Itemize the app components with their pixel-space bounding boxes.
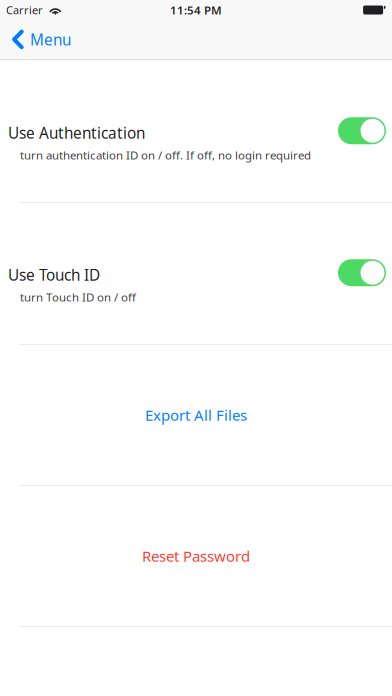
staticText: Export All Files: [145, 405, 247, 425]
button[interactable]: Use Authentication: [0, 107, 392, 160]
staticText: turn authentication ID on / off. If off,…: [20, 147, 311, 163]
button[interactable]: Reset Password: [0, 486, 392, 626]
button[interactable]: Export All Files: [0, 345, 392, 485]
staticText: Use Authentication: [8, 122, 145, 143]
staticText: Reset Password: [142, 546, 250, 566]
staticText: 11:54 PM: [170, 2, 222, 18]
staticText: Carrier: [6, 3, 43, 17]
staticText: turn Touch ID on / off: [20, 289, 136, 305]
staticText: Use Touch ID: [8, 264, 100, 285]
button[interactable]: Menu: [0, 20, 81, 59]
staticText: Menu: [30, 29, 71, 50]
button[interactable]: Use Touch ID: [0, 249, 392, 302]
